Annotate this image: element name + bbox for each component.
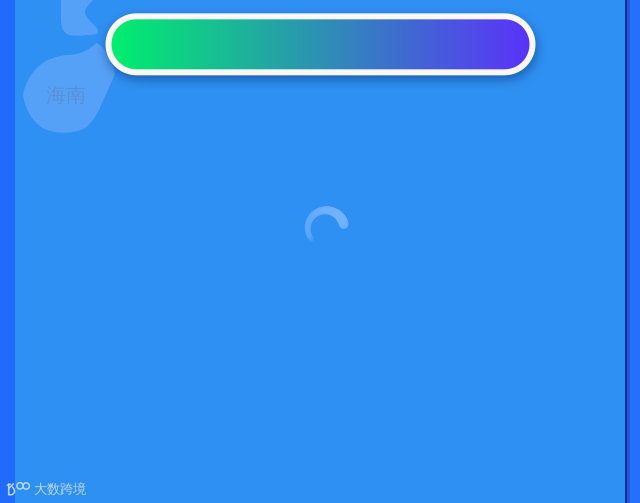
staticText: 海南 [46, 83, 86, 107]
staticText: 大数跨境 [34, 481, 86, 497]
button[interactable]: 海南自贸港热力分布 [105, 13, 535, 75]
